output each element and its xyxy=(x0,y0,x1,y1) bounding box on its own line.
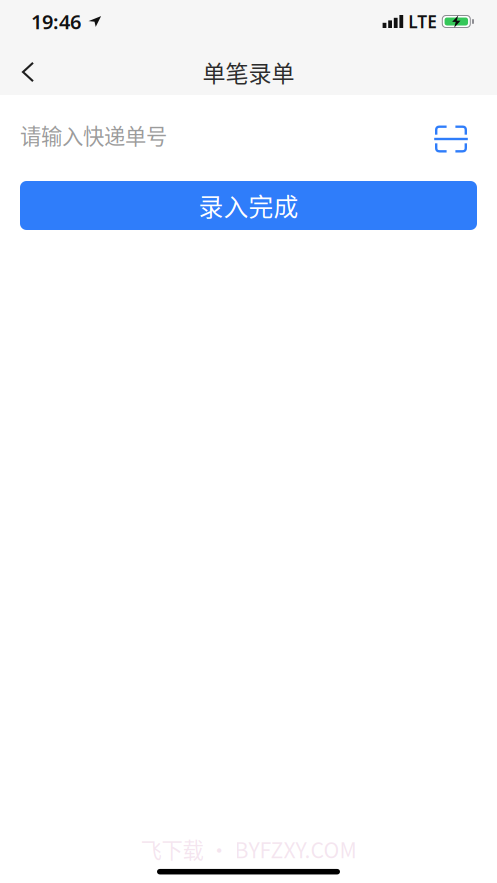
staticText: 录入完成 xyxy=(198,187,298,223)
staticText: 19:46 xyxy=(31,8,81,35)
staticText: 单笔录单 xyxy=(202,55,294,89)
staticText: LTE xyxy=(408,10,437,33)
button[interactable]: 请输入快递单号 xyxy=(20,95,427,175)
staticText: 请输入快递单号 xyxy=(20,120,167,150)
button[interactable]: Back xyxy=(0,49,56,95)
button[interactable]: 录入完成 xyxy=(20,181,477,230)
staticText: 飞下载 · BYFZXY.COM xyxy=(140,834,356,864)
button[interactable]: Scan barcode xyxy=(427,111,475,159)
